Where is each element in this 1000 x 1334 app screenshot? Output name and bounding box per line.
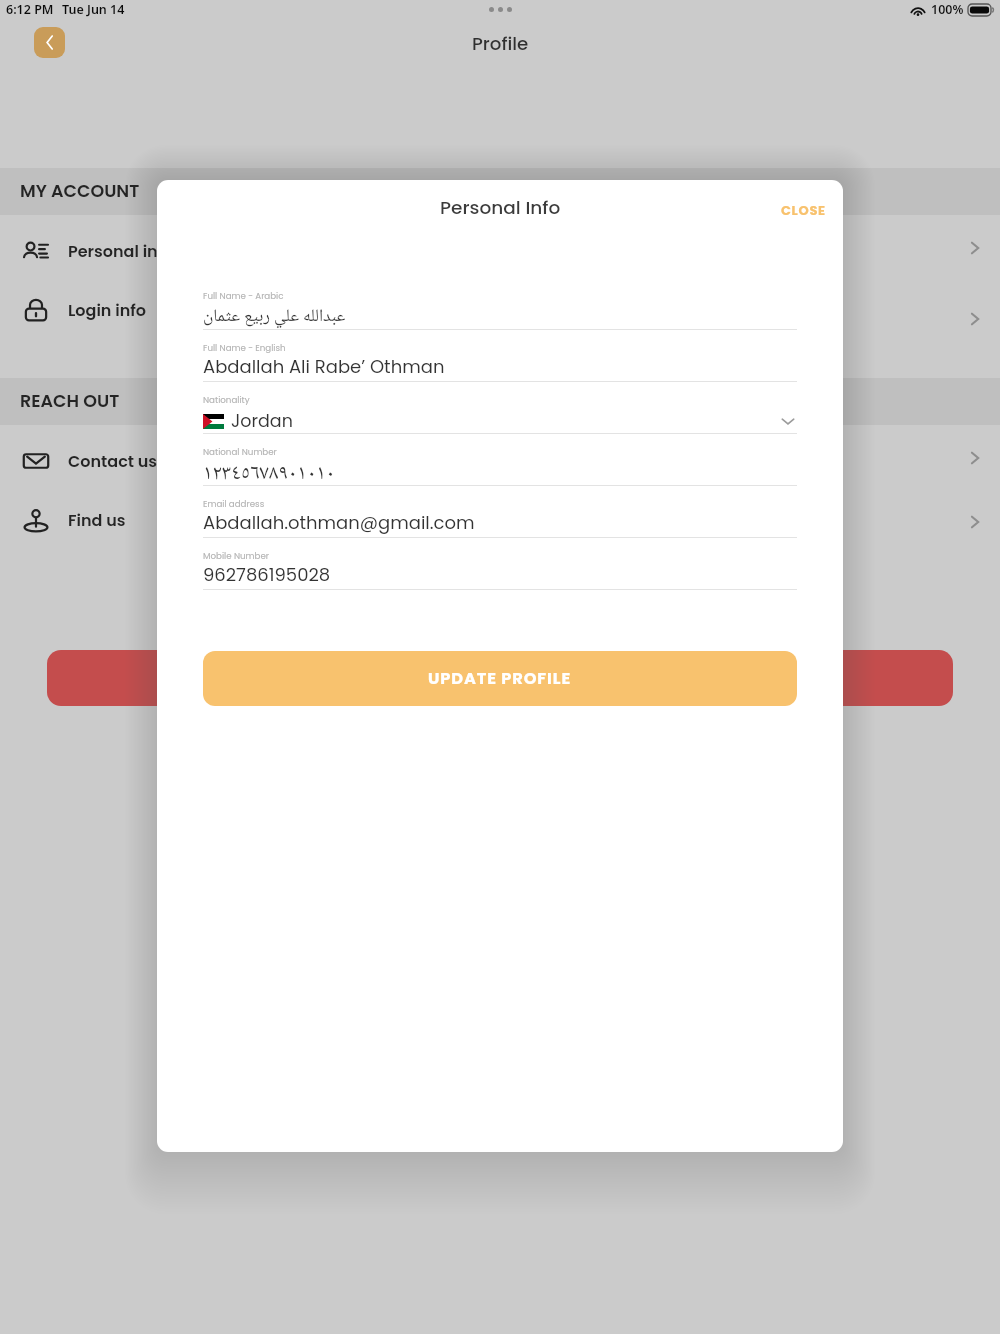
- staticText: Profile: [472, 31, 529, 56]
- button[interactable]: LOG OUT: [47, 650, 953, 706]
- staticText: Personal info: [68, 240, 174, 262]
- staticText: 6:12 PM: [6, 1, 54, 18]
- button[interactable]: Find us: [0, 491, 1000, 549]
- button[interactable]: CLOSE: [765, 189, 842, 231]
- staticText: Contact us: [68, 450, 158, 472]
- staticText: Full Name - English: [203, 342, 286, 354]
- staticText: Nationality: [203, 394, 250, 406]
- staticText: REACH OUT: [20, 389, 120, 414]
- staticText: Tue Jun 14: [62, 1, 125, 18]
- staticText: Personal Info: [440, 195, 561, 221]
- staticText: 962786195028: [203, 562, 331, 587]
- staticText: MY ACCOUNT: [20, 179, 140, 204]
- staticText: National Number: [203, 446, 277, 458]
- staticText: 100%: [931, 1, 964, 18]
- staticText: Find us: [68, 509, 126, 531]
- button[interactable]: Login info: [0, 281, 1000, 339]
- staticText: Abdallah.othman@gmail.com: [203, 510, 475, 535]
- staticText: Abdallah Ali Rabe’ Othman: [203, 354, 445, 379]
- staticText: CLOSE: [781, 201, 826, 219]
- staticText: UPDATE PROFILE: [428, 667, 572, 690]
- staticText: LOG OUT: [460, 666, 540, 690]
- button[interactable]: Jordan: [203, 407, 797, 435]
- staticText: Login info: [68, 299, 146, 321]
- button[interactable]: Back: [34, 27, 65, 58]
- staticText: عبدالله علي ربيع عثمان: [203, 302, 346, 330]
- staticText: Jordan: [231, 409, 293, 434]
- button[interactable]: Contact us: [0, 432, 1000, 490]
- staticText: Full Name - Arabic: [203, 290, 284, 302]
- button[interactable]: Personal info: [0, 222, 1000, 280]
- staticText: ١٢٣٤٥٦٧٨٩٠١٠١٠: [203, 457, 336, 485]
- button[interactable]: UPDATE PROFILE: [203, 651, 797, 706]
- staticText: Email address: [203, 498, 265, 510]
- staticText: Mobile Number: [203, 550, 270, 562]
